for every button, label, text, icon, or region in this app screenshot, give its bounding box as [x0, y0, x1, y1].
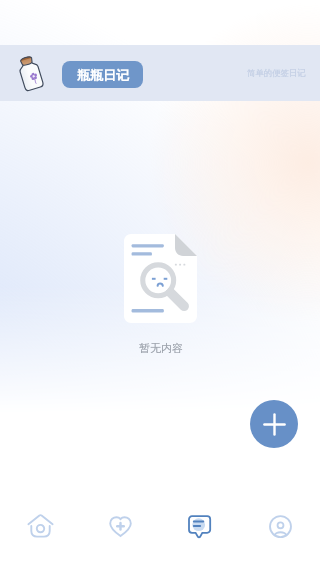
staticText: 简单的便签日记: [247, 68, 306, 79]
button[interactable]: Home: [0, 496, 80, 568]
button[interactable]: Favourites: [80, 496, 160, 568]
button[interactable]: Profile: [240, 496, 320, 568]
button[interactable]: Add note: [250, 400, 298, 448]
button[interactable]: Diary: [160, 496, 240, 568]
staticText: 瓶瓶日记: [77, 67, 129, 83]
button[interactable]: 瓶瓶日记: [62, 61, 143, 88]
staticText: 暂无内容: [139, 341, 183, 355]
